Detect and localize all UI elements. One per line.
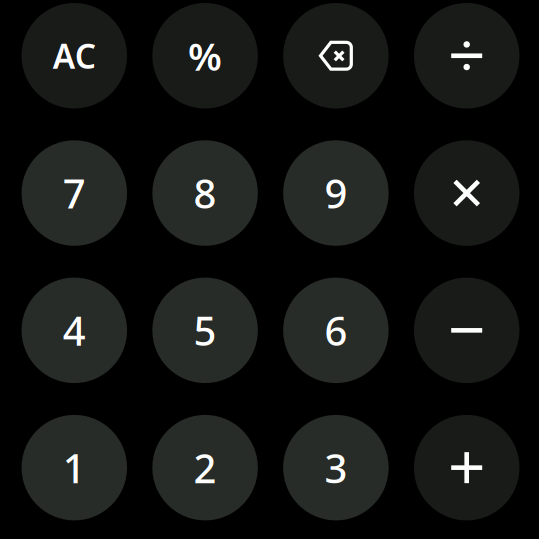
button[interactable]: Divide bbox=[414, 3, 519, 108]
button[interactable]: Percent bbox=[152, 3, 258, 108]
staticText: 5 bbox=[194, 304, 217, 357]
staticText: % bbox=[188, 30, 222, 81]
button[interactable]: 9 bbox=[283, 140, 389, 246]
staticText: 1 bbox=[63, 441, 86, 494]
button[interactable]: Delete bbox=[283, 3, 389, 108]
staticText: 8 bbox=[194, 166, 217, 220]
button[interactable]: Add bbox=[414, 415, 519, 520]
button[interactable]: All Clear bbox=[22, 3, 127, 108]
button[interactable]: 5 bbox=[152, 278, 258, 383]
button[interactable]: Subtract bbox=[414, 278, 519, 383]
button[interactable]: 2 bbox=[152, 415, 258, 520]
button[interactable]: 7 bbox=[22, 140, 127, 246]
button[interactable]: Multiply bbox=[414, 140, 519, 246]
button[interactable]: 3 bbox=[283, 415, 389, 520]
staticText: 3 bbox=[324, 441, 347, 494]
button[interactable]: 6 bbox=[283, 278, 389, 383]
button[interactable]: 4 bbox=[22, 278, 127, 383]
staticText: 4 bbox=[63, 304, 86, 357]
staticText: 7 bbox=[63, 166, 86, 220]
staticText: AC bbox=[53, 34, 96, 78]
staticText: 2 bbox=[194, 441, 217, 494]
button[interactable]: 1 bbox=[22, 415, 127, 520]
staticText: 6 bbox=[324, 304, 347, 357]
button[interactable]: 8 bbox=[152, 140, 258, 246]
staticText: 9 bbox=[324, 166, 347, 220]
